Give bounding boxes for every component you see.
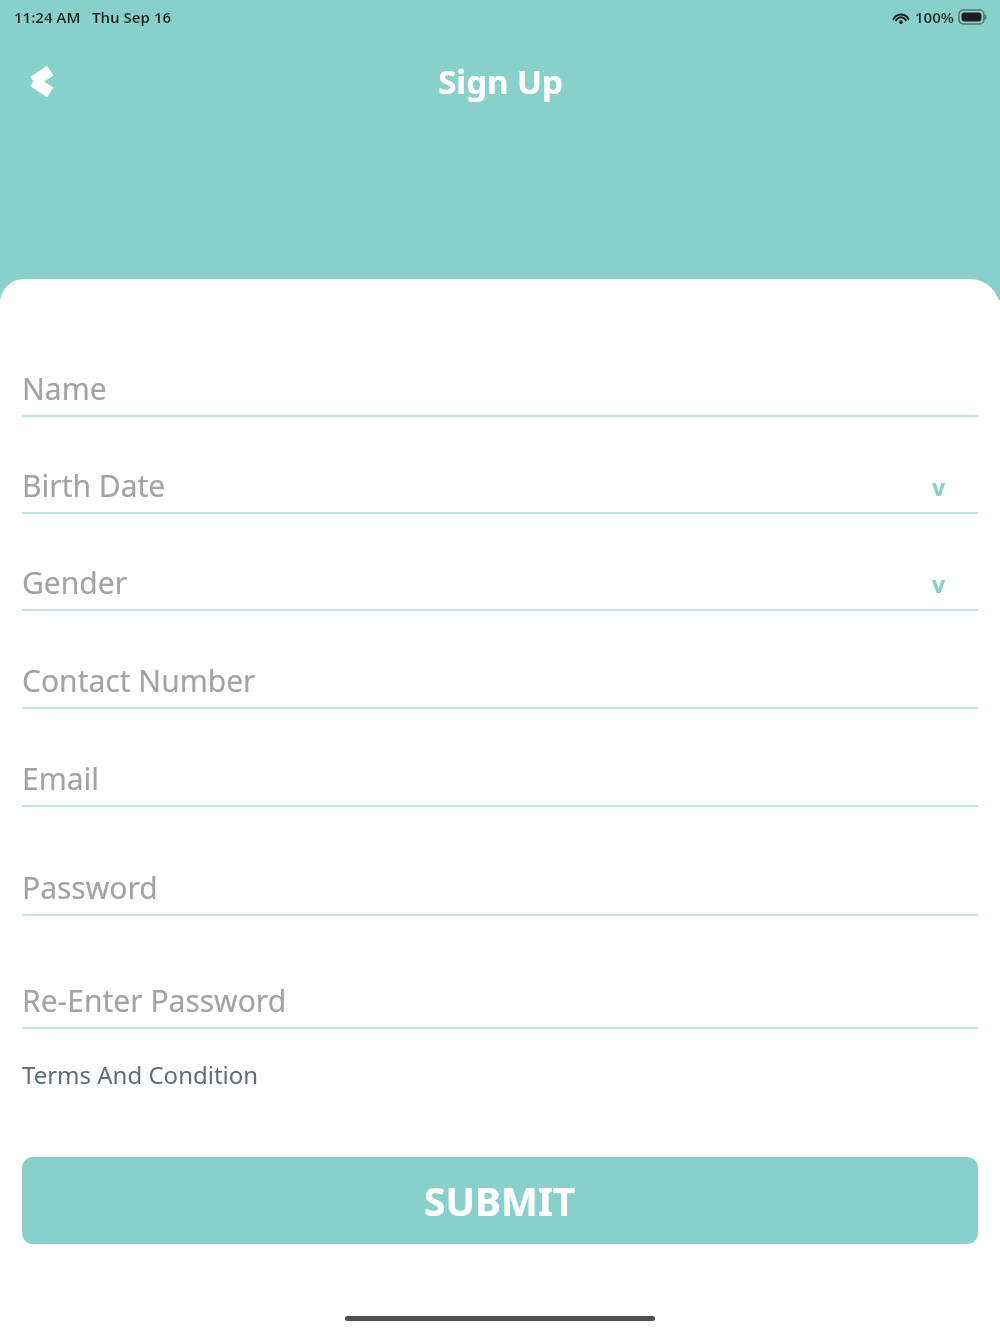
- button[interactable]: Name: [22, 353, 978, 417]
- staticText: 100%: [915, 7, 954, 27]
- staticText: Name: [22, 368, 107, 409]
- button[interactable]: Email: [22, 743, 978, 807]
- staticText: Sign Up: [438, 59, 563, 104]
- button[interactable]: Terms And Condition: [22, 1058, 259, 1091]
- button[interactable]: Back: [6, 50, 72, 112]
- button[interactable]: Re-Enter Password: [22, 965, 978, 1029]
- staticText: Gender: [22, 562, 128, 603]
- button[interactable]: SUBMIT: [22, 1157, 978, 1244]
- button[interactable]: Birth Date: [22, 450, 978, 514]
- button[interactable]: Password: [22, 852, 978, 916]
- button[interactable]: Contact Number: [22, 645, 978, 709]
- staticText: Contact Number: [22, 660, 256, 701]
- staticText: Birth Date: [22, 465, 166, 506]
- staticText: v: [932, 471, 946, 502]
- staticText: 11:24 AM: [14, 7, 81, 27]
- staticText: Terms And Condition: [22, 1058, 259, 1091]
- staticText: Re-Enter Password: [22, 980, 287, 1021]
- staticText: Thu Sep 16: [92, 7, 172, 27]
- staticText: Password: [22, 867, 158, 908]
- staticText: v: [932, 568, 946, 599]
- staticText: SUBMIT: [424, 1174, 576, 1227]
- button[interactable]: Gender: [22, 547, 978, 611]
- staticText: Email: [22, 758, 100, 799]
